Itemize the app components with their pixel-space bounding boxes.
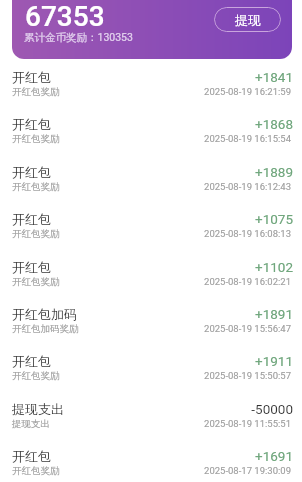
staticText: 开红包 xyxy=(12,448,51,464)
staticText: +1691 xyxy=(254,448,293,464)
staticText: +1911 xyxy=(254,353,293,369)
button[interactable]: 提现支出 xyxy=(0,392,302,439)
staticText: 2025-08-19 16:12:43 xyxy=(204,181,291,192)
staticText: 提现 xyxy=(235,12,261,28)
staticText: 开红包 xyxy=(12,353,51,369)
staticText: 2025-08-19 16:08:13 xyxy=(204,228,291,239)
staticText: 2025-08-17 19:30:09 xyxy=(204,465,291,476)
staticText: 开红包加码 xyxy=(12,306,77,322)
button[interactable]: 提现 xyxy=(214,7,281,32)
staticText: 开红包 xyxy=(12,69,51,85)
staticText: 开红包奖励 xyxy=(12,86,60,98)
staticText: 开红包 xyxy=(12,164,51,180)
staticText: 开红包加码奖励 xyxy=(12,323,79,335)
button[interactable]: 开红包加码 xyxy=(0,297,302,344)
button[interactable]: 67353 xyxy=(12,0,292,59)
staticText: 开红包 xyxy=(12,116,51,132)
staticText: +1075 xyxy=(254,211,293,227)
button[interactable]: 开红包 xyxy=(0,202,302,249)
staticText: 开红包奖励 xyxy=(12,133,60,145)
staticText: +1889 xyxy=(254,164,293,180)
staticText: -50000 xyxy=(251,401,293,417)
staticText: 2025-08-19 15:56:47 xyxy=(204,323,291,334)
staticText: 开红包 xyxy=(12,211,51,227)
staticText: 提现支出 xyxy=(12,418,50,430)
button[interactable]: 开红包 xyxy=(0,60,302,107)
button[interactable]: 开红包 xyxy=(0,439,302,482)
staticText: 开红包 xyxy=(12,259,51,275)
staticText: 2025-08-19 11:55:51 xyxy=(204,418,291,429)
staticText: 累计金币奖励：130353 xyxy=(24,31,133,44)
staticText: 开红包奖励 xyxy=(12,181,60,193)
button[interactable]: 开红包 xyxy=(0,250,302,297)
staticText: 开红包奖励 xyxy=(12,276,60,288)
staticText: +1841 xyxy=(254,69,293,85)
staticText: 提现支出 xyxy=(12,401,64,417)
staticText: 2025-08-19 15:50:57 xyxy=(204,370,291,381)
staticText: +1891 xyxy=(254,306,293,322)
button[interactable]: 开红包 xyxy=(0,107,302,154)
staticText: 2025-08-19 16:21:59 xyxy=(204,86,291,97)
button[interactable]: 开红包 xyxy=(0,155,302,202)
staticText: 2025-08-19 16:15:54 xyxy=(204,133,291,144)
staticText: +1102 xyxy=(254,259,293,275)
staticText: +1868 xyxy=(254,116,293,132)
button[interactable]: 开红包 xyxy=(0,344,302,391)
staticText: 开红包奖励 xyxy=(12,228,60,240)
staticText: 67353 xyxy=(25,0,105,33)
staticText: 2025-08-19 16:02:21 xyxy=(204,276,291,287)
staticText: 开红包奖励 xyxy=(12,465,60,477)
staticText: 开红包奖励 xyxy=(12,370,60,382)
